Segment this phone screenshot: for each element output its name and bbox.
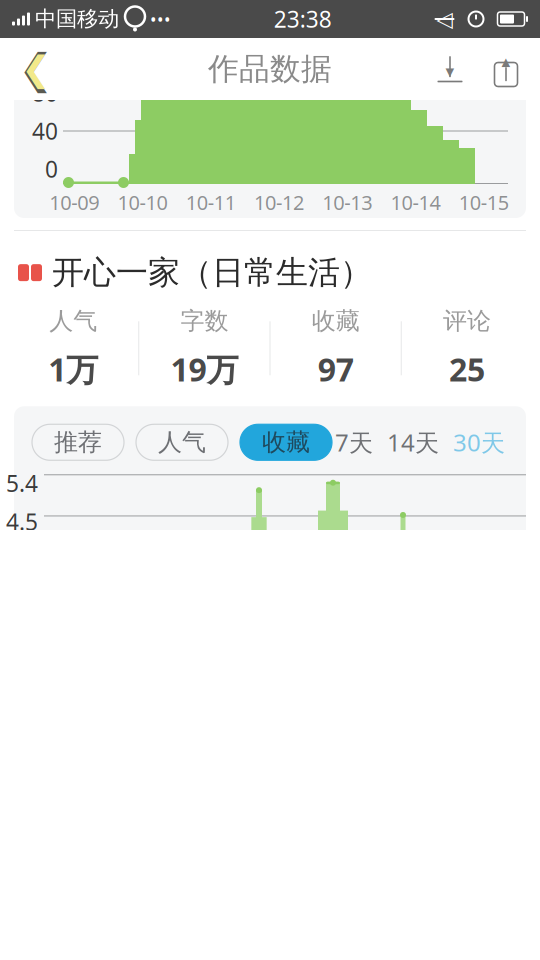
staticText: 10-10 [117, 189, 167, 216]
staticText: ◁ [436, 7, 452, 31]
button[interactable]: 7天 [332, 424, 376, 460]
staticText: 14天 [387, 426, 439, 458]
staticText: 字数 [180, 306, 228, 336]
staticText: 80 [32, 78, 58, 108]
button[interactable]: 30天 [450, 424, 508, 460]
staticText: ••• [150, 7, 171, 30]
staticText: 10-15 [459, 189, 509, 216]
staticText: 评论 [443, 306, 491, 336]
staticText: ❮ [21, 49, 50, 89]
staticText: 30天 [453, 426, 505, 458]
button[interactable]: 14天 [384, 424, 442, 460]
staticText: 7天 [335, 426, 373, 458]
staticText: 4.5 [6, 507, 38, 537]
staticText: ▾ [445, 61, 454, 81]
staticText: 10-14 [391, 189, 441, 216]
staticText: 1万 [48, 348, 98, 390]
staticText: 10-11 [186, 189, 236, 216]
staticText: 40 [32, 116, 58, 146]
staticText: 25 [449, 348, 485, 390]
staticText: 10-09 [49, 189, 99, 216]
button[interactable]: 收藏 [240, 424, 332, 460]
staticText: 开心一家（日常生活） [52, 253, 372, 292]
staticText: 97 [318, 348, 354, 390]
staticText: 推荐 [54, 427, 102, 457]
staticText: 10-12 [254, 189, 304, 216]
button[interactable]: Share [478, 41, 534, 97]
staticText: 10-13 [322, 189, 372, 216]
staticText: 中国移动 [35, 6, 119, 32]
button[interactable]: Download [422, 41, 478, 97]
button[interactable]: 推荐 [32, 424, 124, 460]
staticText: 0 [45, 154, 58, 184]
staticText: 19万 [170, 348, 238, 390]
staticText: 人气 [49, 306, 97, 336]
staticText: 作品数据 [208, 50, 332, 88]
staticText: ▴ [501, 51, 510, 71]
staticText: 收藏 [262, 427, 310, 457]
staticText: 人气 [158, 427, 206, 457]
button[interactable]: 人气 [136, 424, 228, 460]
staticText: 收藏 [312, 306, 360, 336]
button[interactable]: Back [6, 39, 66, 99]
staticText: 23:38 [274, 4, 332, 34]
staticText: ❮ [18, 45, 53, 92]
staticText: 5.4 [6, 468, 38, 498]
